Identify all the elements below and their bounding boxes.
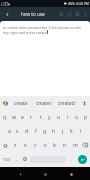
button[interactable]: q [0,110,9,124]
button[interactable]: More options [81,7,89,21]
button[interactable]: , [13,152,21,166]
staticText: t [40,114,42,121]
button[interactable]: g [40,124,49,138]
button[interactable]: v [40,138,50,152]
staticText: p [84,114,88,121]
staticText: y [48,114,51,121]
staticText: i [67,114,69,121]
button[interactable]: Bookmark [73,7,81,21]
button[interactable]: b [50,138,60,152]
button[interactable]: f [31,124,40,138]
staticText: c [34,142,37,149]
staticText: 46% 4:34 PM [68,1,89,6]
staticText: , [16,156,18,162]
button[interactable]: ?123 [0,152,13,166]
staticText: creater [36,100,52,106]
button[interactable]: Home [39,168,51,180]
button[interactable]: Google [0,96,10,110]
button[interactable]: z [10,138,20,152]
button[interactable]: t [36,110,45,124]
button[interactable]: Recents [65,168,77,180]
button[interactable]: c [30,138,40,152]
button[interactable]: . [67,152,75,166]
button[interactable]: Search [57,7,65,21]
button[interactable]: Shift [0,138,10,152]
button[interactable]: x [20,138,30,152]
button[interactable]: p [81,110,90,124]
button[interactable]: s [13,124,22,138]
staticText: . [70,156,72,162]
staticText: v [44,142,47,149]
staticText: k [70,128,73,135]
staticText: q [3,114,7,121]
staticText: create [14,100,28,106]
staticText: m [73,142,78,149]
staticText: created [58,100,75,106]
staticText: ?123 [3,157,11,162]
button[interactable]: Navigate up [0,7,14,21]
button[interactable]: w [9,110,18,124]
button[interactable]: to create note pressed the 3 dot button … [0,21,90,96]
staticText: to create note pressed the 3 dot button … [3,25,82,30]
staticText: b [53,142,57,149]
staticText: g [43,128,47,135]
button[interactable]: Back [14,168,26,180]
button[interactable]: Emoji [21,152,29,166]
staticText: e [21,114,24,121]
staticText: h [52,128,56,135]
button[interactable]: r [27,110,36,124]
button[interactable]: k [67,124,76,138]
button[interactable]: n [60,138,70,152]
button[interactable]: o [72,110,81,124]
staticText: z [14,142,17,149]
button[interactable]: Share [65,7,73,21]
button[interactable]: Backspace [80,138,90,152]
staticText: j [62,128,64,135]
staticText: w [12,114,16,121]
button[interactable]: creater [32,96,55,110]
staticText: x [24,142,27,149]
staticText: f [35,128,37,135]
button[interactable]: create [10,96,32,110]
button[interactable]: e [18,110,27,124]
staticText: n [63,142,67,149]
staticText: s [16,128,19,135]
button[interactable]: i [63,110,72,124]
button[interactable]: h [49,124,58,138]
button[interactable]: a [5,124,13,138]
button[interactable]: Voice input [78,96,90,110]
button[interactable]: Enter [75,152,90,166]
staticText: r [30,114,33,121]
button[interactable]: l [76,124,85,138]
staticText: a [8,128,11,135]
staticText: d [25,128,29,135]
button[interactable]: d [22,124,31,138]
button[interactable]: created [55,96,78,110]
button[interactable]: y [45,110,54,124]
staticText: top right and press create [3,30,47,35]
staticText: o [75,114,79,121]
button[interactable]: m [70,138,80,152]
staticText: how to use [21,11,45,17]
staticText: l [80,128,82,135]
staticText: u [57,114,61,121]
button[interactable]: j [58,124,67,138]
button[interactable]: u [54,110,63,124]
